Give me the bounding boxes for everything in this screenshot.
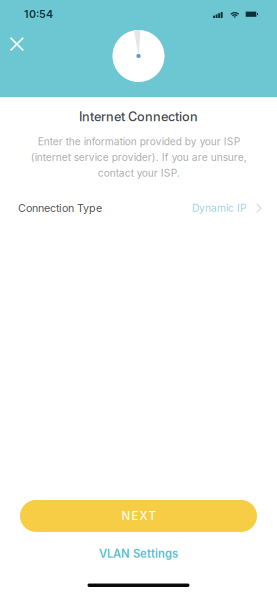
staticText: Dynamic IP bbox=[192, 202, 247, 214]
staticText: 10:54 bbox=[24, 7, 53, 20]
staticText: Internet Connection bbox=[79, 109, 198, 124]
button[interactable]: VLAN Settings bbox=[83, 532, 194, 569]
button[interactable]: Close bbox=[0, 28, 35, 62]
staticText: VLAN Settings bbox=[99, 547, 178, 560]
staticText: Enter the information provided by your I… bbox=[30, 135, 246, 179]
button[interactable]: Connection Type bbox=[0, 193, 277, 223]
staticText: NEXT bbox=[121, 509, 155, 523]
staticText: Connection Type bbox=[18, 202, 102, 215]
button[interactable]: NEXT bbox=[20, 500, 257, 532]
